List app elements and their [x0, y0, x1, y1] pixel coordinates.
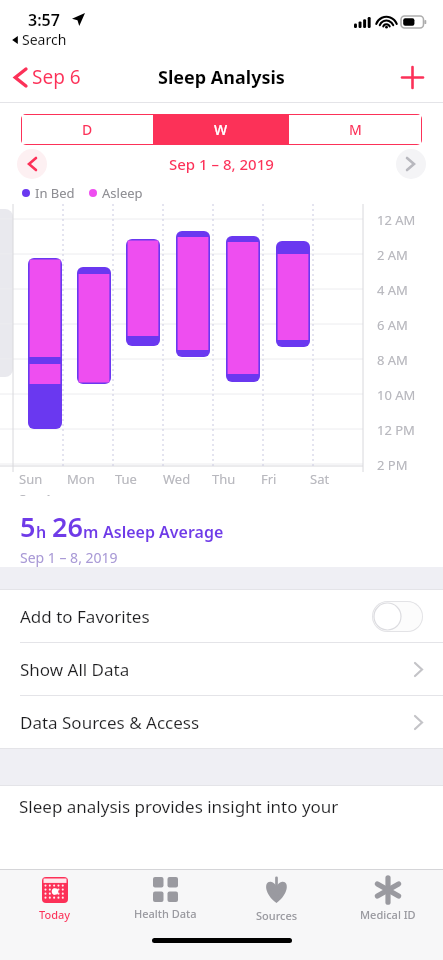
staticText: M — [349, 120, 362, 139]
staticText: 2 PM — [377, 456, 408, 474]
staticText: Sep 1 — [19, 490, 53, 496]
button[interactable]: Previous week — [17, 149, 47, 179]
staticText: Sleep analysis provides insight into you… — [19, 795, 339, 818]
staticText: 12 PM — [377, 421, 415, 439]
button[interactable]: M — [288, 114, 422, 145]
staticText: 10 AM — [377, 386, 416, 404]
button[interactable]: Show All Data — [0, 643, 443, 695]
staticText: 2 AM — [377, 246, 408, 264]
staticText: Sun — [19, 470, 43, 488]
staticText: Sep 6 — [32, 64, 81, 90]
button[interactable]: Data Sources & Access — [0, 696, 443, 748]
staticText: Medical ID — [360, 907, 416, 922]
staticText: Search — [22, 30, 67, 49]
staticText: Asleep — [102, 184, 143, 202]
button[interactable]: D — [21, 114, 154, 145]
staticText: Data Sources & Access — [20, 711, 414, 734]
staticText: D — [82, 120, 93, 139]
staticText: Sources — [256, 908, 298, 923]
staticText: Thu — [212, 470, 236, 488]
button[interactable]: Sep 6 — [10, 58, 85, 96]
staticText: m — [83, 521, 99, 543]
button[interactable]: Medical ID — [332, 870, 443, 926]
staticText: 4 AM — [377, 281, 408, 299]
staticText: 5 — [20, 508, 36, 545]
button[interactable]: Add to Favorites toggle — [372, 601, 423, 632]
staticText: Sat — [310, 470, 330, 488]
staticText: h — [36, 521, 47, 543]
staticText: Sep 1 – 8, 2019 — [20, 548, 118, 567]
button[interactable]: Today — [0, 870, 110, 926]
staticText: Tue — [115, 470, 137, 488]
button[interactable]: Add — [394, 59, 431, 96]
staticText: 8 AM — [377, 351, 408, 369]
button[interactable]: Sources — [221, 870, 332, 926]
button[interactable]: Health Data — [110, 870, 221, 926]
button[interactable]: Next week — [396, 149, 426, 179]
staticText: Asleep Average — [103, 521, 224, 543]
staticText: Wed — [163, 470, 191, 488]
staticText: 26 — [52, 508, 83, 545]
staticText: 12 AM — [377, 211, 416, 229]
staticText: 3:57 — [28, 9, 60, 31]
staticText: Fri — [261, 470, 277, 488]
staticText: Show All Data — [20, 658, 414, 681]
staticText: In Bed — [35, 184, 75, 202]
staticText: W — [214, 120, 228, 139]
staticText: Health Data — [134, 906, 197, 921]
staticText: Sep 1 – 8, 2019 — [169, 154, 274, 174]
staticText: 6 AM — [377, 316, 408, 334]
button[interactable]: Add to Favorites — [0, 590, 443, 642]
staticText: Mon — [67, 470, 95, 488]
staticText: Sleep Analysis — [158, 65, 285, 90]
staticText: Add to Favorites — [20, 605, 372, 628]
button[interactable]: W — [154, 114, 288, 145]
staticText: Today — [39, 907, 71, 922]
